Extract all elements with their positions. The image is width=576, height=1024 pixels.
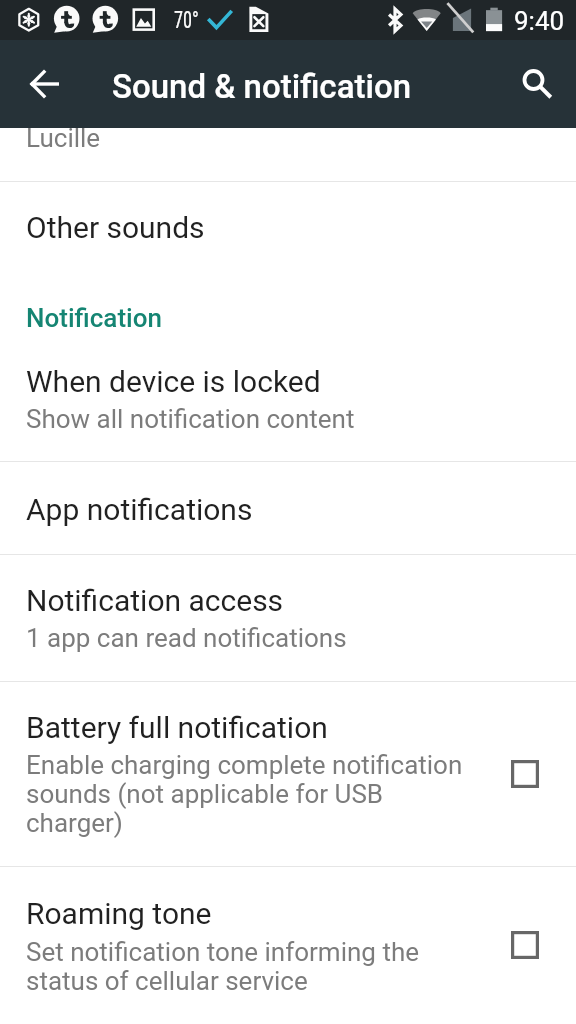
button[interactable]: Navigate up: [19, 58, 71, 110]
button[interactable]: Battery full notification checkbox: [511, 760, 539, 788]
staticText: Set notification tone informing the stat…: [26, 937, 436, 996]
staticText: 9:40: [514, 6, 565, 36]
staticText: Enable charging complete notification so…: [26, 750, 478, 838]
button[interactable]: Search: [513, 57, 565, 109]
staticText: 70°: [174, 6, 199, 34]
staticText: Notification: [26, 303, 162, 333]
staticText: App notifications: [26, 492, 253, 527]
staticText: Sound & notification: [112, 67, 412, 106]
button[interactable]: [0, 274, 576, 461]
staticText: Battery full notification: [26, 710, 328, 745]
staticText: 1 app can read notifications: [26, 623, 347, 653]
staticText: Notification access: [26, 583, 284, 618]
staticText: When device is locked: [26, 364, 321, 399]
button[interactable]: [0, 182, 576, 274]
staticText: Show all notification content: [26, 404, 355, 434]
button[interactable]: Roaming tone checkbox: [511, 931, 539, 959]
button[interactable]: [0, 462, 576, 554]
button[interactable]: [0, 129, 576, 181]
button[interactable]: [0, 867, 576, 1024]
staticText: Other sounds: [26, 210, 205, 245]
button[interactable]: [0, 682, 576, 866]
staticText: Roaming tone: [26, 896, 212, 931]
staticText: Lucille: [26, 123, 101, 153]
button[interactable]: [0, 555, 576, 681]
